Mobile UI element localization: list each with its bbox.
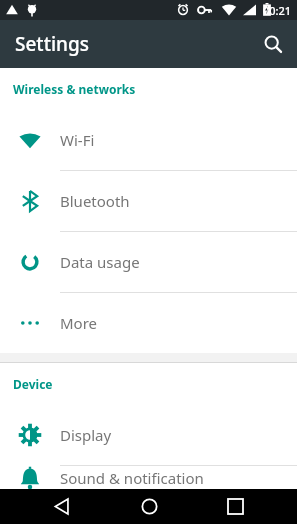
button[interactable]: Wi-Fi	[0, 110, 297, 171]
button[interactable]: Display	[0, 405, 297, 466]
staticText: Sound & notification	[60, 468, 204, 488]
staticText: Bluetooth	[60, 191, 130, 211]
staticText: More	[60, 313, 98, 333]
staticText: Wi-Fi	[60, 130, 95, 150]
button[interactable]: Bluetooth	[0, 171, 297, 232]
staticText: Display	[60, 425, 112, 445]
staticText: Data usage	[60, 252, 140, 272]
staticText: Settings	[15, 31, 89, 57]
button[interactable]: Search	[249, 20, 297, 68]
button[interactable]: Home	[125, 489, 173, 524]
button[interactable]: Recent apps	[211, 489, 259, 524]
staticText: Wireless & networks	[13, 81, 136, 97]
staticText: 00:21	[263, 3, 292, 18]
button[interactable]: Back	[38, 489, 86, 524]
button[interactable]: Sound & notification	[0, 466, 297, 489]
staticText: Device	[13, 376, 53, 392]
button[interactable]: More	[0, 293, 297, 353]
button[interactable]: Data usage	[0, 232, 297, 293]
